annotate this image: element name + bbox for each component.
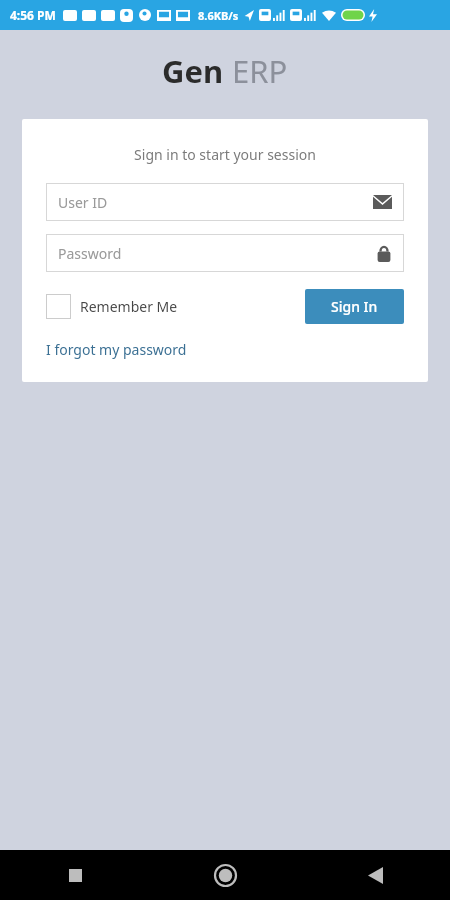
button[interactable]: User ID <box>46 183 404 221</box>
staticText: ERP <box>232 50 288 92</box>
staticText: 8.6KB/s <box>198 8 239 23</box>
other: Password <box>376 244 392 262</box>
button[interactable]: I forgot my password <box>46 340 187 359</box>
button[interactable]: Sign In <box>305 289 404 324</box>
staticText: Gen <box>162 50 224 92</box>
button[interactable]: Back <box>300 850 450 900</box>
button[interactable]: Password <box>46 234 404 272</box>
staticText: Remember Me <box>80 297 178 316</box>
staticText: 4:56 PM <box>10 7 56 23</box>
staticText: User ID <box>58 193 108 212</box>
button[interactable]: Home <box>150 850 300 900</box>
other: Email <box>373 195 392 209</box>
button[interactable]: Recents <box>0 850 150 900</box>
staticText: Sign In <box>331 297 378 316</box>
button[interactable]: Remember Me <box>46 294 178 319</box>
staticText: Sign in to start your session <box>22 145 428 164</box>
staticText: I forgot my password <box>46 340 187 359</box>
staticText: Password <box>58 244 122 263</box>
